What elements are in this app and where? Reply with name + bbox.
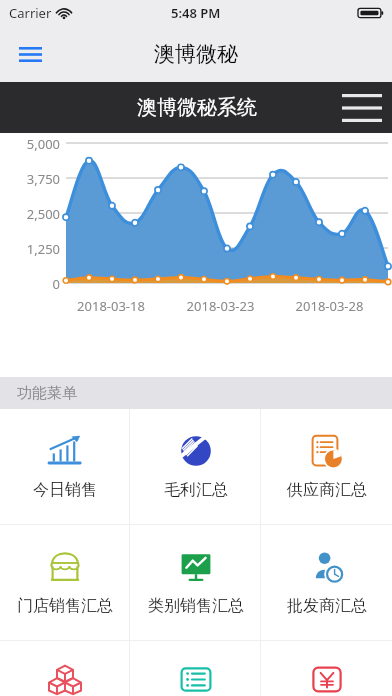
staticText: 批发商汇总 bbox=[287, 596, 367, 616]
staticText: 2018-03-28 bbox=[275, 297, 384, 315]
button[interactable]: Menu bbox=[8, 32, 52, 76]
button[interactable]: 商品库存 bbox=[0, 641, 130, 696]
staticText: 2018-03-18 bbox=[56, 297, 166, 315]
staticText: 5,000 bbox=[2, 135, 60, 153]
button[interactable]: 类别销售汇总 bbox=[130, 525, 261, 640]
staticText: 门店销售汇总 bbox=[17, 596, 113, 616]
staticText: 3,750 bbox=[2, 170, 60, 188]
staticText: 今日销售 bbox=[33, 480, 97, 500]
staticText: 功能菜单 bbox=[17, 384, 77, 403]
staticText: 0 bbox=[2, 275, 60, 293]
staticText: 2018-03-23 bbox=[166, 297, 275, 315]
button[interactable]: 今日销售 bbox=[0, 409, 130, 524]
button[interactable]: 供应商汇总 bbox=[261, 409, 392, 524]
staticText: 5:48 PM bbox=[171, 4, 221, 22]
staticText: 类别销售汇总 bbox=[148, 596, 244, 616]
staticText: 毛利汇总 bbox=[164, 480, 228, 500]
button[interactable]: 收款汇总 bbox=[261, 641, 392, 696]
staticText: 2,500 bbox=[2, 205, 60, 223]
staticText: 供应商汇总 bbox=[287, 480, 367, 500]
button[interactable]: 门店销售汇总 bbox=[0, 525, 130, 640]
staticText: 澳博微秘系统 bbox=[137, 95, 257, 120]
button[interactable]: 批发商汇总 bbox=[261, 525, 392, 640]
button[interactable]: 毛利汇总 bbox=[130, 409, 261, 524]
staticText: 1,250 bbox=[2, 240, 60, 258]
button[interactable]: 销售明细 bbox=[130, 641, 261, 696]
staticText: 澳博微秘 bbox=[154, 41, 238, 67]
button[interactable]: System menu bbox=[338, 84, 386, 132]
staticText: Carrier bbox=[9, 4, 52, 22]
